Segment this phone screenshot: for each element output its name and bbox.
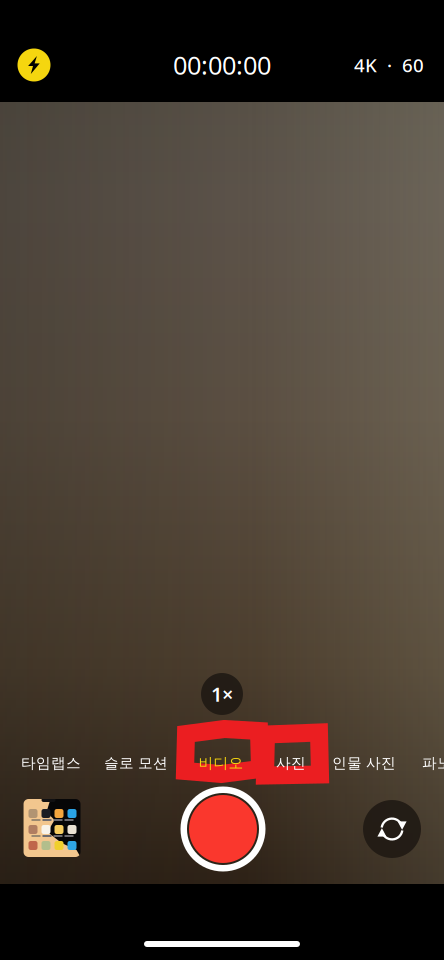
staticText: 4K: [354, 53, 377, 77]
button[interactable]: Video quality 4K 60 fps: [346, 48, 432, 82]
button[interactable]: Record: [180, 786, 265, 871]
staticText: 60: [402, 53, 424, 77]
button[interactable]: Photo library: [23, 799, 80, 857]
button[interactable]: Switch camera: [363, 800, 421, 858]
button[interactable]: 파노: [415, 746, 444, 780]
staticText: 1×: [211, 681, 233, 707]
button[interactable]: 사진: [269, 746, 313, 780]
staticText: 슬로 모션: [104, 754, 168, 772]
button[interactable]: 타임랩스: [14, 746, 88, 780]
staticText: ·: [387, 53, 392, 77]
staticText: 사진: [276, 754, 306, 772]
button[interactable]: Flash: [7, 38, 61, 92]
button[interactable]: 인물 사진: [325, 746, 403, 780]
button[interactable]: 1×: [196, 668, 248, 720]
staticText: 타임랩스: [21, 754, 81, 772]
button[interactable]: 슬로 모션: [97, 746, 175, 780]
staticText: 00:00:00: [173, 48, 271, 82]
staticText: 파노: [422, 754, 444, 772]
staticText: 비디오: [198, 754, 243, 772]
button[interactable]: 비디오: [191, 746, 250, 780]
staticText: 인물 사진: [332, 754, 396, 772]
